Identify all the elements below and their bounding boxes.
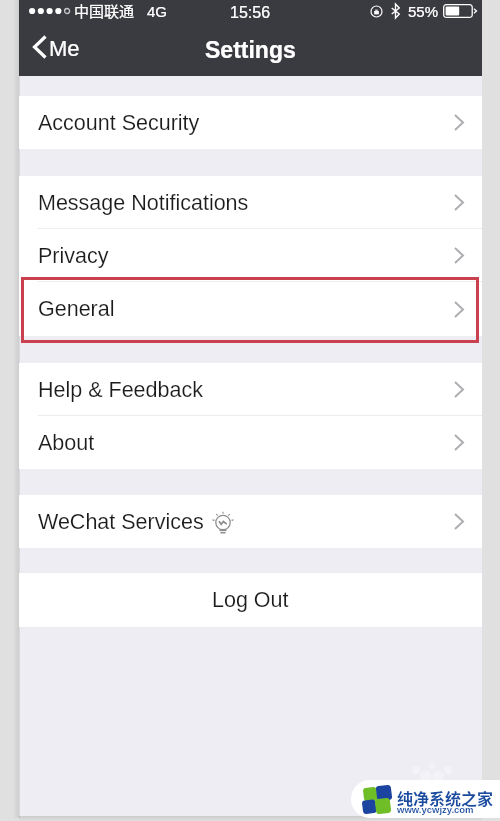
staticText: Me [49,36,80,61]
staticText: 4G [147,3,168,20]
staticText: 中国联通 [74,0,135,22]
staticText: Help & Feedback [38,378,203,402]
staticText: 纯净系统之家 [397,786,494,809]
button[interactable]: Message Notifications [19,176,482,229]
staticText: www.ycwjzy.com [397,804,474,815]
button[interactable]: Back to Me [29,30,84,63]
staticText: WeChat Services [38,510,204,534]
staticText: General [38,297,115,321]
button[interactable]: WeChat Services [19,495,482,548]
staticText: 55% [408,3,439,20]
button[interactable]: General [19,282,482,336]
staticText: Account Security [38,111,200,135]
staticText: About [38,431,95,455]
staticText: Settings [205,37,296,63]
button[interactable]: About [19,416,482,469]
button[interactable]: Account Security [19,96,482,149]
staticText: 15:56 [230,4,271,22]
staticText: Log Out [212,588,289,612]
staticText: Privacy [38,244,109,268]
button[interactable]: Help & Feedback [19,363,482,416]
button[interactable]: Log Out [19,573,482,627]
staticText: Message Notifications [38,191,249,215]
button[interactable]: Privacy [19,229,482,282]
